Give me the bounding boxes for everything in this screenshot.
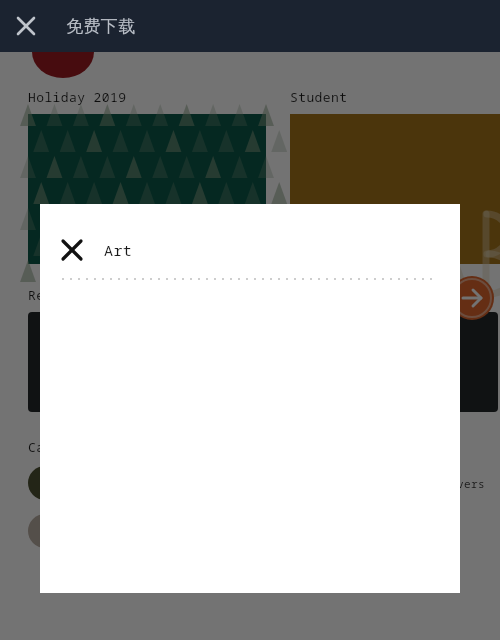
staticText: Holiday 2019 <box>28 88 127 106</box>
staticText: Student <box>290 88 348 106</box>
staticText: Art <box>104 240 133 260</box>
staticText: Book of Covers <box>387 476 485 491</box>
button[interactable]: Close dialog <box>40 224 104 276</box>
staticText: Recently Used <box>28 286 135 304</box>
staticText: 免费下载 <box>66 16 136 37</box>
button[interactable]: Next <box>450 276 494 320</box>
staticText: Categories <box>28 438 111 456</box>
button[interactable]: Close <box>0 0 52 52</box>
